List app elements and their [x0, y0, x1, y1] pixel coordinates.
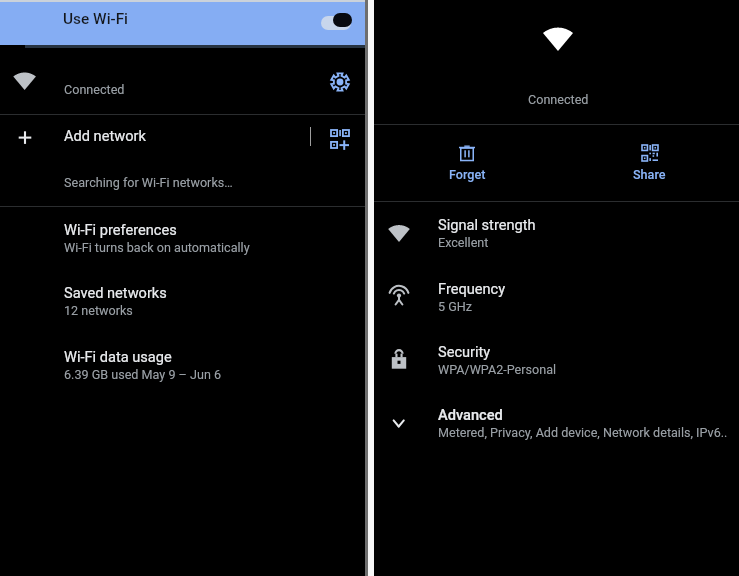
button[interactable]: Share [556, 125, 739, 201]
staticText: Connected [528, 92, 589, 107]
staticText: WPA/WPA2-Personal [438, 362, 557, 377]
staticText: Security [438, 343, 491, 360]
button[interactable]: Wi-Fi data usage [0, 335, 365, 398]
button[interactable]: Forget [374, 125, 556, 201]
staticText: Share [633, 167, 666, 182]
button[interactable]: Add network with QR code [319, 118, 361, 160]
staticText: 6.39 GB used May 9 – Jun 6 [64, 367, 222, 382]
staticText: Forget [449, 167, 486, 182]
staticText: Wi-Fi data usage [64, 348, 172, 365]
button[interactable]: Connected [0, 48, 365, 114]
staticText: Use Wi-Fi [63, 10, 129, 28]
staticText: Connected [64, 82, 125, 97]
button[interactable]: Use Wi-Fi [0, 2, 365, 45]
staticText: Frequency [438, 280, 506, 297]
staticText: Signal strength [438, 216, 536, 233]
staticText: Wi-Fi preferences [64, 221, 177, 238]
button[interactable]: Add network [0, 115, 365, 163]
staticText: Advanced [438, 406, 503, 423]
staticText: Metered, Privacy, Add device, Network de… [438, 425, 728, 440]
button[interactable]: Signal strength [374, 203, 739, 267]
button[interactable]: Advanced [374, 393, 739, 457]
button[interactable]: Wi-Fi preferences [0, 208, 365, 271]
button[interactable]: Frequency [374, 267, 739, 331]
staticText: Searching for Wi-Fi networks… [64, 175, 233, 190]
button[interactable]: Security [374, 330, 739, 394]
button[interactable]: Saved networks [0, 271, 365, 334]
staticText: Excellent [438, 235, 489, 250]
staticText: 12 networks [64, 303, 133, 318]
staticText: Wi-Fi turns back on automatically [64, 240, 250, 255]
staticText: Add network [64, 127, 146, 144]
staticText: 5 GHz [438, 299, 473, 314]
staticText: Saved networks [64, 284, 167, 301]
button[interactable]: Network settings [319, 61, 361, 103]
